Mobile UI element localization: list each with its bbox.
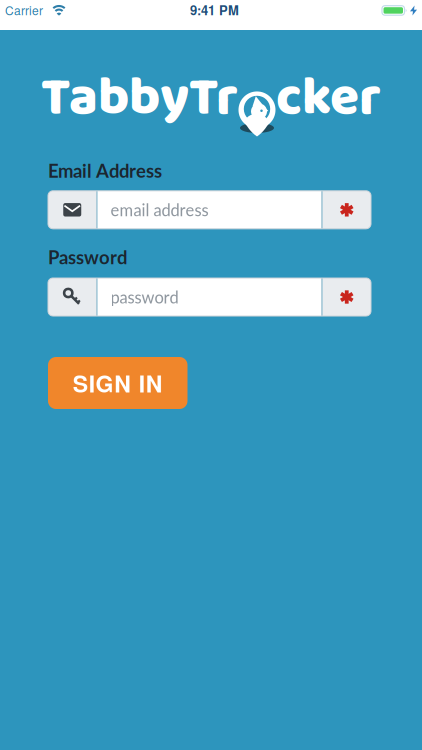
staticText: 9:41 PM bbox=[190, 1, 239, 19]
textField[interactable]: email address bbox=[110, 200, 321, 220]
staticText: password bbox=[110, 287, 178, 307]
textField[interactable]: password bbox=[110, 287, 321, 307]
staticText: Carrier bbox=[5, 2, 43, 18]
staticText: TabbyTr bbox=[41, 56, 238, 141]
staticText: cker bbox=[276, 56, 381, 141]
button[interactable]: SIGN IN bbox=[48, 357, 187, 409]
staticText: SIGN IN bbox=[73, 367, 163, 399]
staticText: Email Address bbox=[48, 159, 162, 182]
staticText: email address bbox=[110, 200, 208, 220]
staticText: password bbox=[110, 287, 178, 307]
staticText: Password bbox=[48, 246, 127, 268]
staticText: email address bbox=[110, 200, 208, 220]
